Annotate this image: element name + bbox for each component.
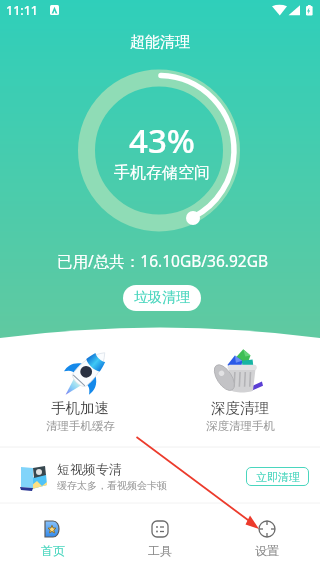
staticText: 清理手机缓存 <box>46 419 115 433</box>
button[interactable]: 垃圾清理 <box>123 285 201 311</box>
button[interactable]: 工具 <box>106 510 213 568</box>
staticText: 深度清理手机 <box>206 419 275 433</box>
button[interactable]: 手机加速 <box>0 344 160 433</box>
staticText: 首页 <box>41 543 65 558</box>
staticText: 43% <box>129 118 195 163</box>
button[interactable]: 深度清理 <box>160 344 320 433</box>
button[interactable]: 设置 <box>213 510 320 568</box>
staticText: 11:11 <box>6 2 39 19</box>
staticText: 设置 <box>255 543 279 558</box>
staticText: 短视频专清 <box>57 461 122 477</box>
staticText: 超能清理 <box>130 33 190 52</box>
staticText: 垃圾清理 <box>134 289 190 307</box>
button[interactable]: 短视频专清 <box>0 450 320 503</box>
staticText: 深度清理 <box>211 399 269 417</box>
staticText: 缓存太多，看视频会卡顿 <box>57 479 167 492</box>
staticText: 手机存储空间 <box>114 163 210 183</box>
button[interactable]: 立即清理 <box>246 467 309 486</box>
staticText: 手机加速 <box>51 399 109 417</box>
button[interactable]: 首页 <box>0 510 106 568</box>
staticText: 工具 <box>148 543 172 558</box>
staticText: 已用/总共：16.10GB/36.92GB <box>57 250 268 271</box>
staticText: 立即清理 <box>256 470 300 484</box>
